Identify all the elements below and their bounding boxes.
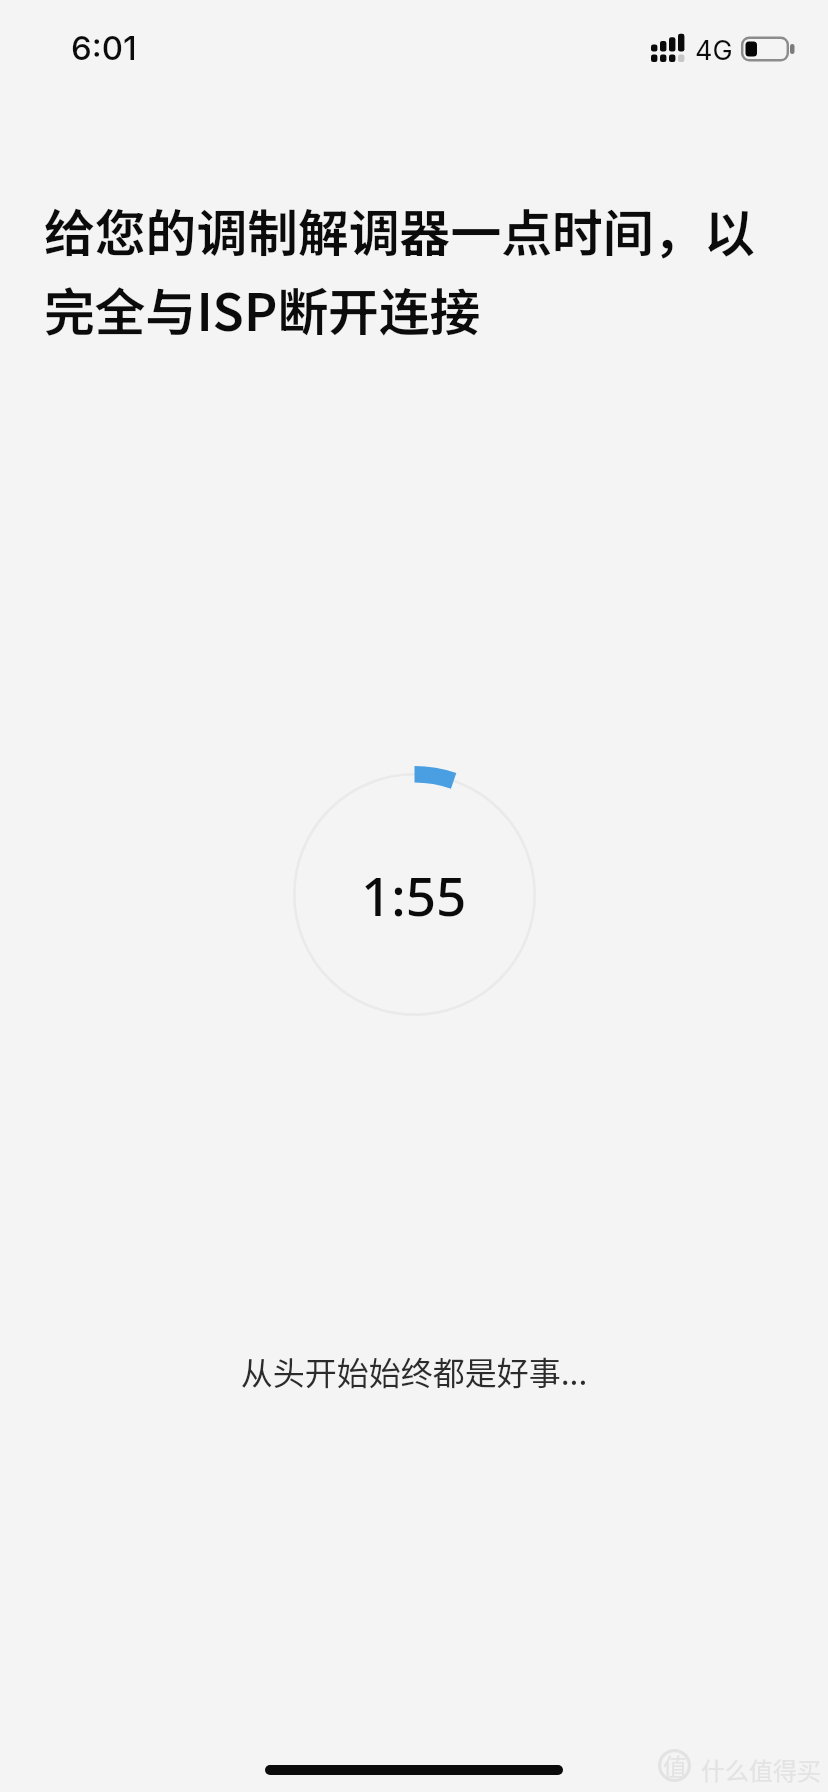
other: Cellular signal strength: [651, 32, 685, 63]
staticText: 值: [663, 1748, 687, 1781]
staticText: 从头开始始终都是好事...: [0, 1348, 828, 1394]
staticText: 4G: [695, 34, 733, 67]
staticText: 1:55: [361, 859, 467, 931]
staticText: 给您的调制解调器一点时间，以完全与ISP断开连接: [44, 193, 774, 346]
staticText: 6:01: [71, 28, 137, 68]
staticText: 什么值得买: [701, 1752, 821, 1786]
button[interactable]: Countdown timer 1:55 remaining: [293, 773, 536, 1016]
other: Battery level low: [741, 36, 795, 62]
